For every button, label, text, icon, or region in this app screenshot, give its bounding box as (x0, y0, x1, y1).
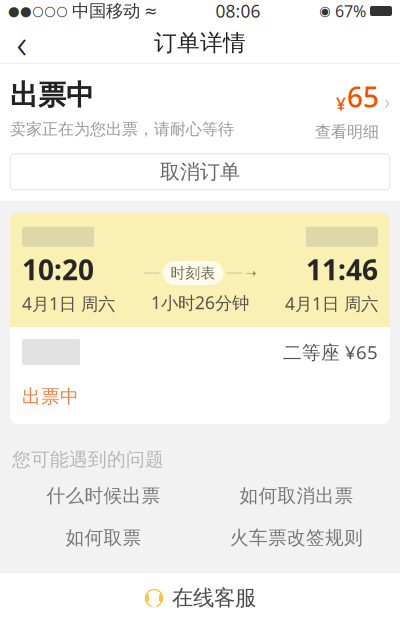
staticText: 1小时26分钟 (151, 291, 249, 314)
staticText: 订单详情 (154, 29, 246, 57)
button[interactable]: 如何取票 (12, 523, 195, 553)
staticText: 如何取票 (65, 526, 141, 549)
staticText: 取消订单 (160, 160, 240, 184)
staticText: ➝ (245, 265, 256, 280)
staticText: › (384, 86, 390, 116)
staticText: 10:20 (22, 251, 94, 288)
staticText: 如何取消出票 (239, 484, 353, 507)
staticText: ≈ (144, 2, 157, 20)
button[interactable]: 火车票改签规则 (205, 523, 388, 553)
button[interactable]: 什么时候出票 (12, 481, 195, 511)
staticText: 卖家正在为您出票，请耐心等待 (10, 119, 234, 139)
staticText: 67% (335, 0, 366, 22)
staticText: 出票中 (22, 385, 79, 408)
staticText: 查看明细 (315, 122, 379, 142)
staticText: 时刻表 (170, 264, 215, 282)
staticText: 二等座 ¥65 (283, 340, 378, 364)
staticText: 4月1日 周六 (285, 292, 378, 315)
staticText: 您可能遇到的问题 (12, 448, 164, 471)
staticText: ●●○○○ (8, 3, 68, 18)
staticText: ◉ (319, 3, 331, 18)
staticText: 什么时候出票 (46, 484, 160, 507)
staticText: 08:06 (215, 0, 260, 22)
button[interactable]: 取消订单 (10, 154, 390, 190)
staticText: 中国移动 (72, 0, 140, 22)
button[interactable]: 返回 (0, 22, 44, 64)
staticText: 65 (347, 78, 379, 115)
staticText: 11:46 (306, 251, 378, 288)
staticText: 在线客服 (172, 585, 256, 611)
staticText: ¥ (336, 92, 346, 115)
staticText: 4月1日 周六 (22, 292, 115, 315)
button[interactable]: 如何取消出票 (205, 481, 388, 511)
staticText: 出票中 (10, 78, 94, 112)
button[interactable]: 在线客服 (0, 572, 400, 624)
staticText: ‹ (16, 16, 27, 69)
button[interactable]: 出票中 (0, 64, 400, 154)
staticText: 火车票改签规则 (230, 526, 363, 549)
